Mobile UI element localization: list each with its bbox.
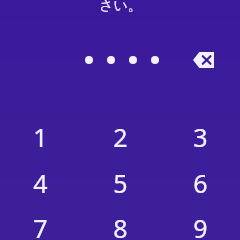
button[interactable]: 4 — [5, 160, 75, 206]
staticText: 7 — [33, 211, 48, 240]
staticText: 2 — [113, 120, 128, 154]
staticText: さい。 — [99, 0, 142, 15]
staticText: 5 — [113, 166, 128, 200]
button[interactable]: 1 — [5, 114, 75, 160]
button[interactable]: Backspace — [185, 44, 221, 75]
button[interactable]: 2 — [85, 114, 155, 160]
button[interactable]: 5 — [85, 160, 155, 206]
staticText: 3 — [193, 120, 208, 154]
staticText: 6 — [193, 166, 208, 200]
staticText: 9 — [193, 211, 208, 240]
staticText: 4 — [33, 166, 48, 200]
button[interactable]: 6 — [165, 160, 235, 206]
staticText: 8 — [113, 211, 128, 240]
button[interactable]: 3 — [165, 114, 235, 160]
button[interactable]: 9 — [165, 205, 235, 240]
staticText: 1 — [33, 120, 48, 154]
button[interactable]: 8 — [85, 205, 155, 240]
button[interactable]: 7 — [5, 205, 75, 240]
